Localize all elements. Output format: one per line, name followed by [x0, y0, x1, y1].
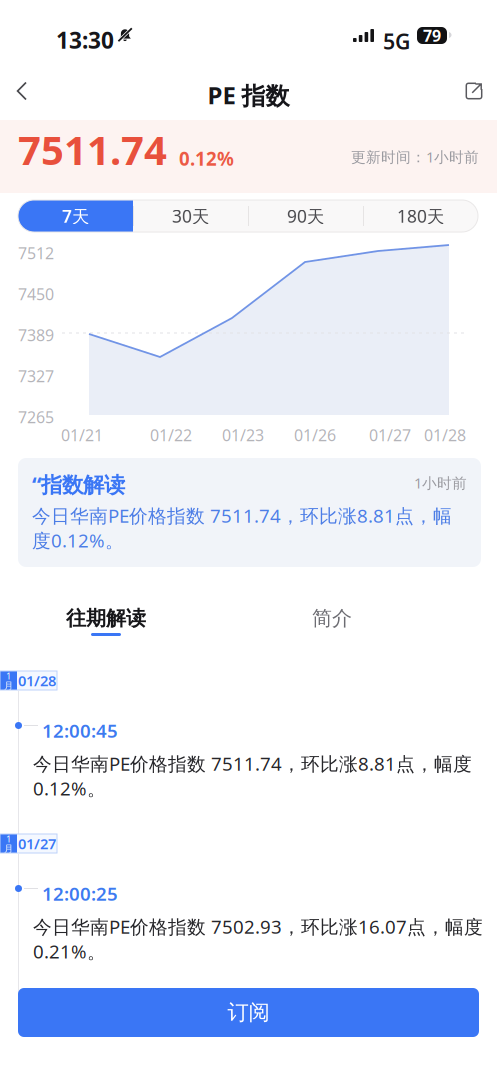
staticText: 7265 [18, 406, 54, 428]
staticText: 7天 [62, 204, 89, 227]
staticText: 01/27 [18, 834, 56, 853]
button[interactable]: Back [0, 69, 44, 113]
staticText: 01/21 [61, 424, 103, 446]
staticText: 简介 [312, 606, 352, 631]
staticText: 13:30 [56, 25, 114, 55]
staticText: 0.12% [179, 146, 234, 171]
staticText: 01/26 [294, 424, 336, 446]
staticText: “指数解读 [32, 470, 125, 498]
staticText: 01/22 [150, 424, 192, 446]
staticText: 今日华南PE价格指数 7511.74，环比涨8.81点，幅度0.12%。 [33, 751, 472, 801]
staticText: 1 [6, 833, 11, 845]
staticText: 01/28 [18, 671, 56, 690]
button[interactable]: 简介 [277, 600, 387, 646]
staticText: 7389 [18, 324, 54, 346]
staticText: 7512 [18, 242, 54, 264]
staticText: 今日华南PE价格指数 7502.93，环比涨16.07点，幅度0.21%。 [33, 914, 483, 964]
staticText: 180天 [397, 204, 444, 227]
button[interactable]: Share [452, 69, 496, 113]
staticText: 更新时间：1小时前 [351, 147, 479, 166]
staticText: PE 指数 [207, 79, 289, 111]
staticText: 12:00:45 [42, 718, 118, 743]
staticText: 1小时前 [414, 473, 467, 492]
button[interactable]: 30天 [133, 200, 248, 232]
staticText: 7511.74 [18, 123, 167, 176]
staticText: 月 [4, 680, 13, 691]
staticText: 1 [6, 670, 11, 682]
staticText: 01/28 [424, 424, 466, 446]
button[interactable]: 订阅 [18, 988, 479, 1037]
staticText: 30天 [172, 204, 209, 227]
staticText: 12:00:25 [42, 881, 118, 906]
staticText: 01/27 [369, 424, 411, 446]
staticText: 5G [383, 27, 410, 55]
button[interactable]: 180天 [363, 200, 478, 232]
button[interactable]: 90天 [248, 200, 363, 232]
button[interactable]: 7天 [18, 200, 133, 232]
staticText: 往期解读 [66, 606, 146, 631]
staticText: 今日华南PE价格指数 7511.74，环比涨8.81点，幅度0.12%。 [32, 503, 452, 553]
staticText: 7327 [18, 365, 54, 387]
staticText: 月 [4, 843, 13, 854]
staticText: 01/23 [222, 424, 264, 446]
staticText: 90天 [287, 204, 324, 227]
staticText: 订阅 [227, 999, 269, 1026]
staticText: 79 [423, 25, 441, 46]
button[interactable]: 往期解读 [36, 600, 176, 646]
staticText: 7450 [18, 283, 54, 305]
